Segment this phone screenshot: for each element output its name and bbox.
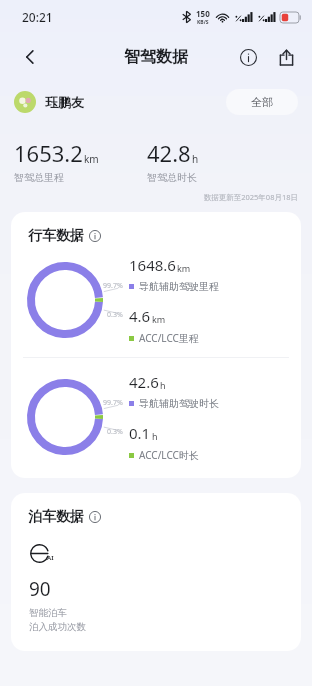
staticText: 1648.6: [129, 255, 176, 275]
staticText: 99.7%: [103, 281, 123, 291]
staticText: 智驾数据: [124, 47, 188, 67]
staticText: 全部: [251, 95, 273, 109]
staticText: 99.7%: [103, 398, 123, 408]
button[interactable]: 全部: [226, 89, 298, 115]
staticText: 42.8: [147, 138, 191, 168]
staticText: 行车数据: [28, 227, 84, 245]
staticText: KB/S: [197, 19, 209, 26]
staticText: 珏鹏友: [45, 94, 84, 110]
staticText: 20:21: [22, 9, 53, 25]
staticText: 4.6: [129, 306, 151, 326]
button[interactable]: Info: [230, 39, 266, 75]
staticText: 0.3%: [107, 427, 123, 437]
staticText: 导航辅助驾驶里程: [139, 280, 219, 293]
staticText: 泊车数据: [28, 508, 84, 526]
staticText: ACC/LCC里程: [139, 331, 199, 345]
staticText: 数据更新至2025年08月18日: [0, 192, 298, 202]
staticText: 泊入成功次数: [29, 621, 86, 633]
staticText: 150: [196, 8, 210, 19]
button[interactable]: Share: [268, 39, 304, 75]
staticText: km: [84, 152, 99, 166]
staticText: h: [160, 379, 166, 391]
staticText: 0.3%: [107, 310, 123, 320]
button[interactable]: 泊车数据: [28, 508, 101, 526]
staticText: 智能泊车: [29, 607, 67, 619]
staticText: 42.6: [129, 372, 159, 392]
staticText: km: [177, 262, 191, 274]
staticText: ACC/LCC时长: [139, 448, 199, 462]
button[interactable]: 行车数据: [28, 227, 101, 245]
staticText: 1653.2: [14, 138, 83, 168]
staticText: 智驾总时长: [147, 171, 197, 184]
staticText: h: [152, 430, 158, 442]
button[interactable]: 珏鹏友: [14, 91, 84, 113]
staticText: km: [152, 313, 166, 325]
staticText: h: [192, 152, 199, 166]
button[interactable]: Back: [10, 37, 50, 77]
staticText: 0.1: [129, 423, 151, 443]
staticText: 智驾总里程: [14, 171, 64, 184]
staticText: AI: [47, 554, 54, 562]
staticText: 90: [29, 576, 51, 602]
staticText: 导航辅助驾驶时长: [139, 397, 219, 410]
